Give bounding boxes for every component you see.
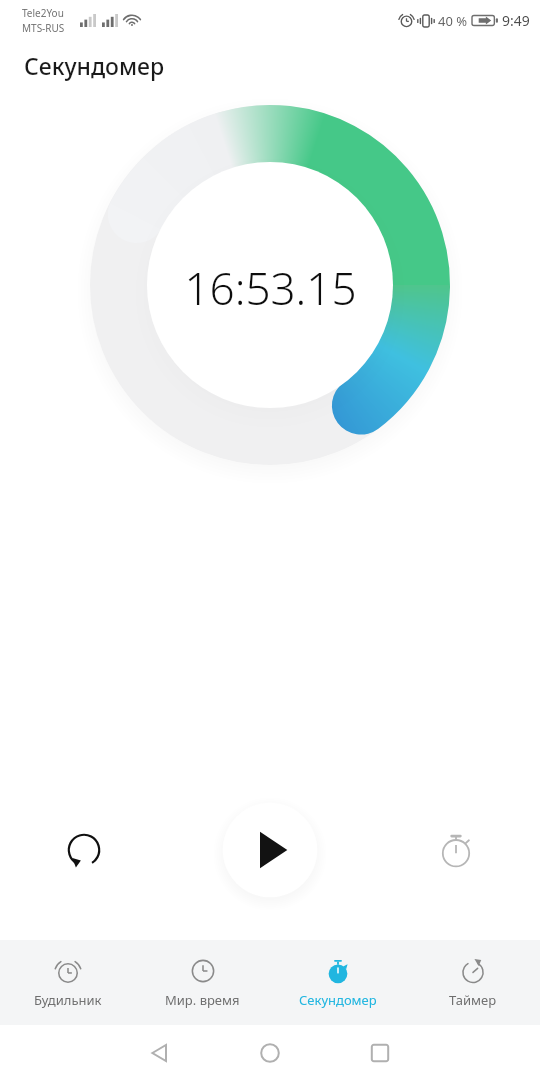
- button[interactable]: Back: [105, 1025, 215, 1080]
- staticText: Секундомер: [299, 991, 377, 1009]
- staticText: MTS-RUS: [22, 21, 65, 35]
- button[interactable]: Сброс: [0, 795, 168, 905]
- staticText: Мир. время: [165, 991, 240, 1009]
- button[interactable]: Таймер: [405, 940, 540, 1025]
- staticText: Будильник: [34, 991, 102, 1009]
- button[interactable]: Старт: [218, 798, 322, 902]
- button[interactable]: Мир. время: [135, 940, 270, 1025]
- button[interactable]: Круг: [371, 795, 540, 905]
- staticText: 16:53.15: [184, 258, 357, 318]
- staticText: Tele2You: [22, 6, 64, 20]
- staticText: Таймер: [449, 991, 497, 1009]
- button[interactable]: Recents: [325, 1025, 435, 1080]
- button[interactable]: Будильник: [0, 940, 135, 1025]
- staticText: Секундомер: [24, 50, 165, 81]
- staticText: 40 %: [438, 12, 468, 30]
- button[interactable]: Секундомер: [270, 940, 405, 1025]
- staticText: 9:49: [502, 11, 530, 30]
- button[interactable]: Home: [215, 1025, 325, 1080]
